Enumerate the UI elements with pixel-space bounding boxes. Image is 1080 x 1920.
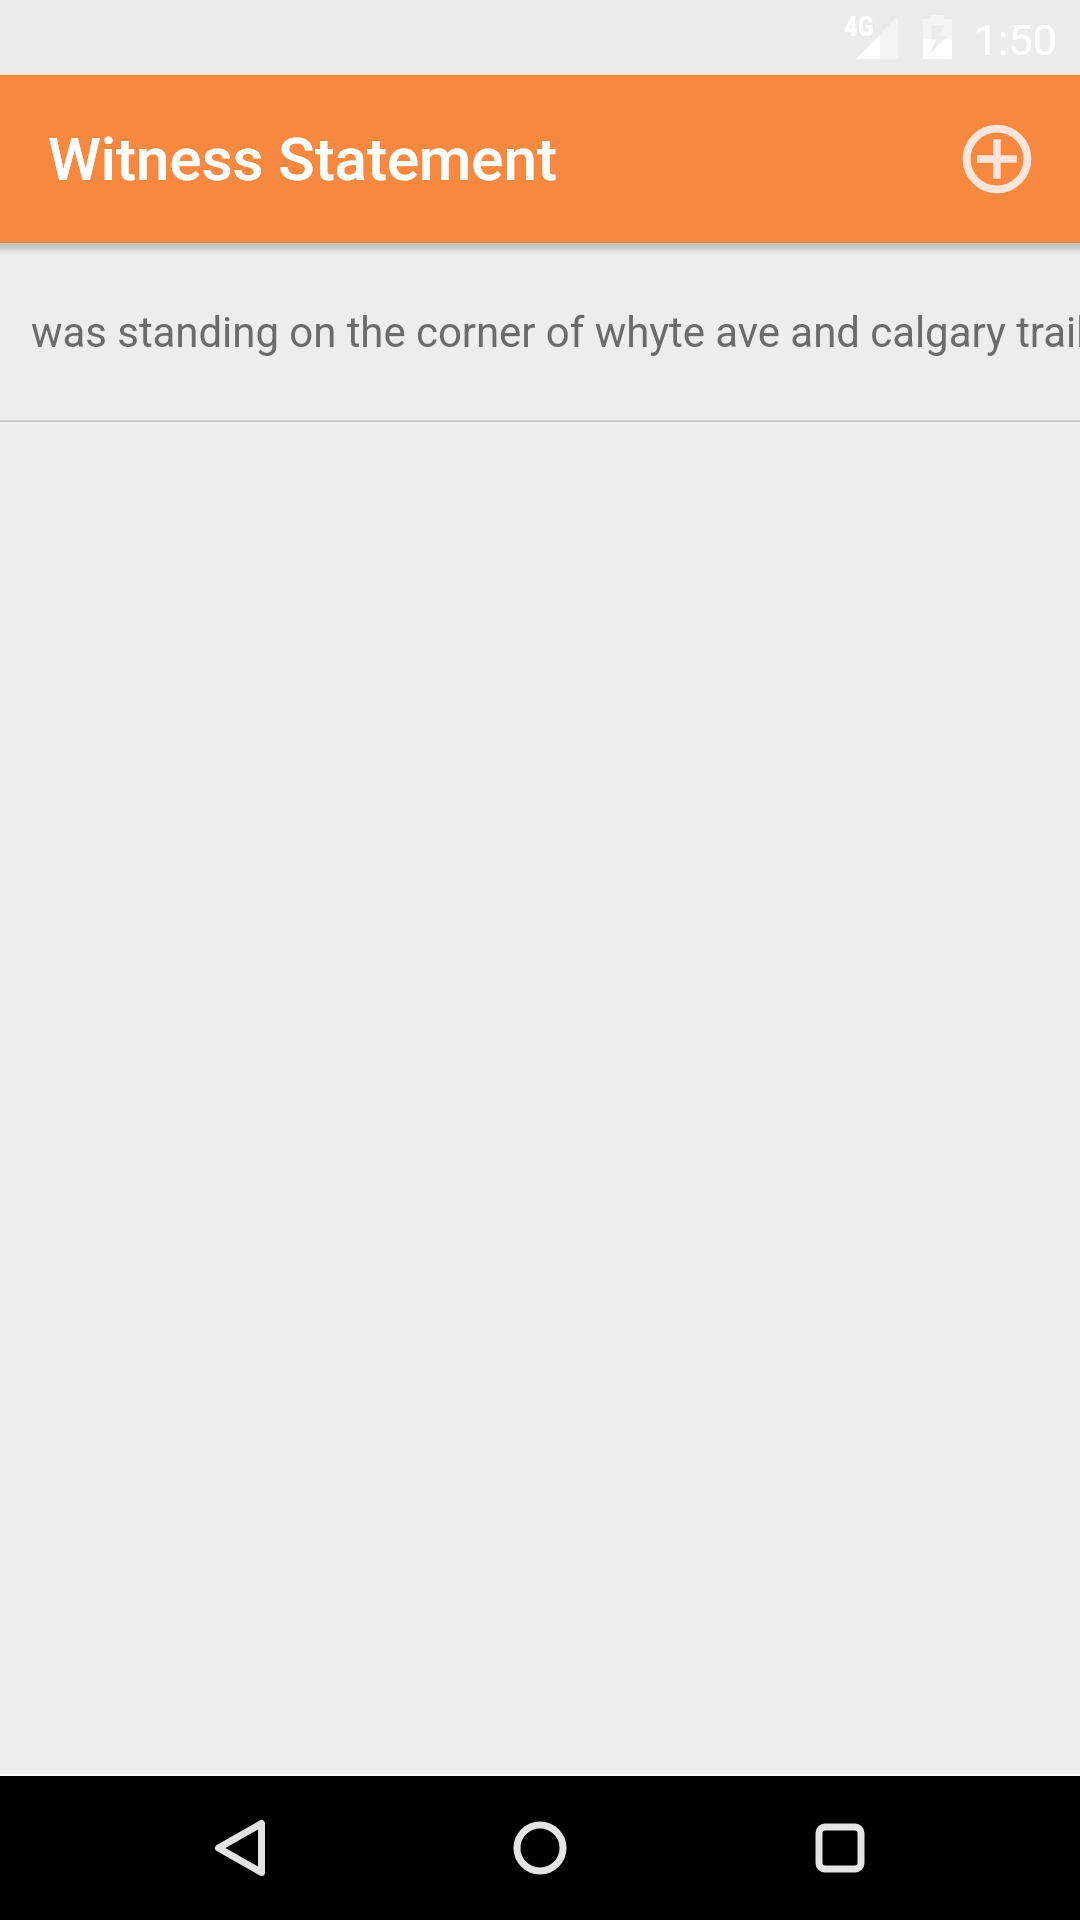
staticText: 4G bbox=[844, 11, 874, 43]
button[interactable]: Add statement bbox=[949, 111, 1045, 207]
button[interactable]: Back bbox=[180, 1788, 300, 1908]
staticText: Witness Statement bbox=[48, 124, 557, 194]
button[interactable]: was standing on the corner of whyte ave … bbox=[0, 243, 1080, 419]
button[interactable]: Recent apps bbox=[780, 1788, 900, 1908]
button[interactable]: Home bbox=[480, 1788, 600, 1908]
staticText: was standing on the corner of whyte ave … bbox=[31, 308, 1080, 357]
staticText: 1:50 bbox=[974, 15, 1057, 65]
